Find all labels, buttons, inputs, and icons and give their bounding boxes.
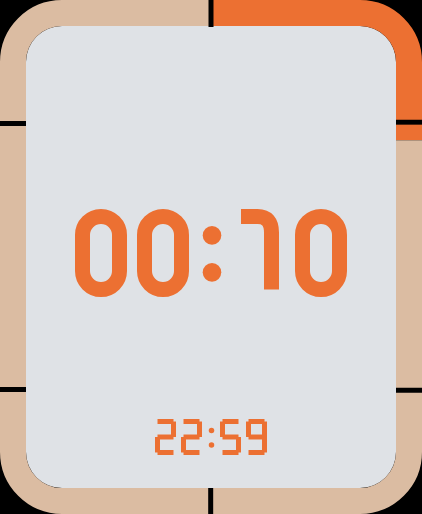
button[interactable]: Timer, 10 seconds remaining	[0, 0, 422, 514]
